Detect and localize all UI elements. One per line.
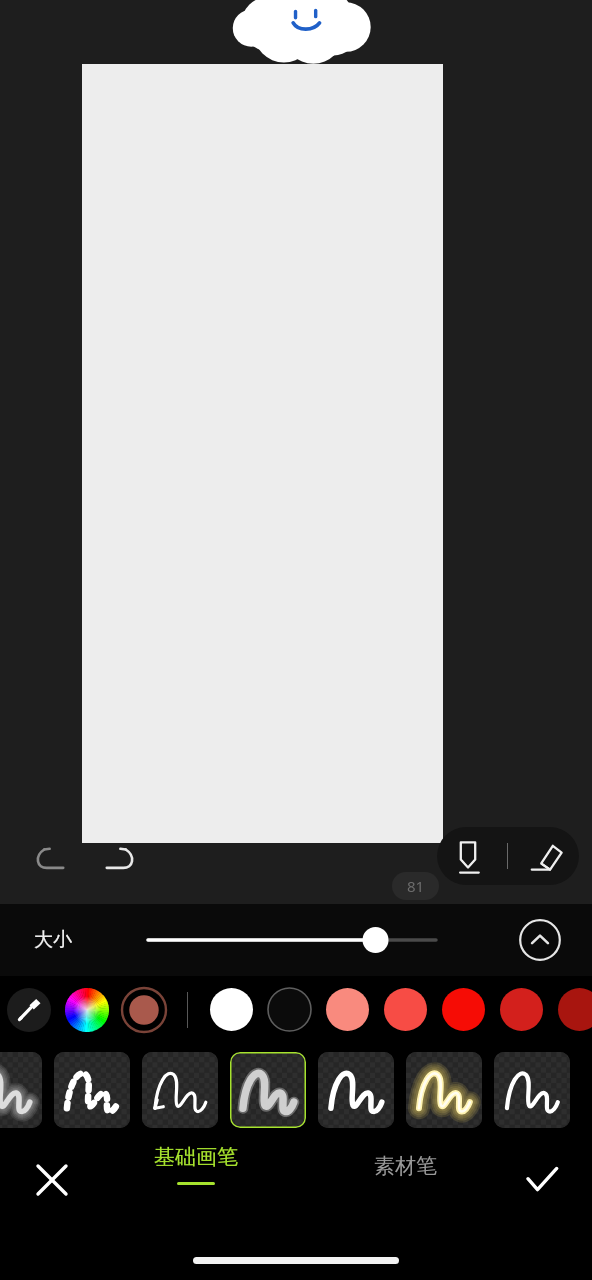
button[interactable]: 基础画笔 xyxy=(130,1144,262,1210)
button[interactable]: Redo xyxy=(96,836,142,882)
button[interactable]: Brush 1 xyxy=(0,1052,42,1128)
button[interactable]: Colour wheel xyxy=(64,987,110,1033)
button[interactable]: Colour swatch xyxy=(499,987,544,1032)
button[interactable]: Brush 7 xyxy=(494,1052,570,1128)
button[interactable]: Undo xyxy=(28,836,74,882)
button[interactable]: Brush 4 xyxy=(230,1052,306,1128)
button[interactable]: Colour swatch xyxy=(209,987,254,1032)
staticText: 素材笔 xyxy=(374,1153,437,1179)
button[interactable] xyxy=(106,904,488,976)
button[interactable]: Colour swatch xyxy=(383,987,428,1032)
button[interactable]: Collapse xyxy=(488,904,592,976)
button[interactable]: Colour picker xyxy=(7,988,51,1032)
staticText: 81 xyxy=(407,876,425,896)
button[interactable]: Cancel xyxy=(22,1150,82,1210)
button[interactable]: Current colour xyxy=(121,987,167,1033)
button[interactable]: Pen xyxy=(437,827,499,885)
button[interactable]: Colour swatch xyxy=(557,987,592,1032)
button[interactable]: Confirm xyxy=(512,1150,572,1210)
staticText: 基础画笔 xyxy=(154,1144,238,1170)
button[interactable]: Colour swatch xyxy=(267,987,312,1032)
staticText: 大小 xyxy=(34,928,72,952)
button[interactable]: 大小 xyxy=(0,904,106,976)
button[interactable]: Colour swatch xyxy=(325,987,370,1032)
button[interactable]: Colour swatch xyxy=(441,987,486,1032)
button[interactable]: Brush 6 xyxy=(406,1052,482,1128)
button[interactable]: Brush 5 xyxy=(318,1052,394,1128)
button[interactable]: Eraser xyxy=(515,827,577,885)
button[interactable]: 素材笔 xyxy=(346,1144,464,1188)
button[interactable]: Brush 2 xyxy=(54,1052,130,1128)
button[interactable]: Brush 3 xyxy=(142,1052,218,1128)
